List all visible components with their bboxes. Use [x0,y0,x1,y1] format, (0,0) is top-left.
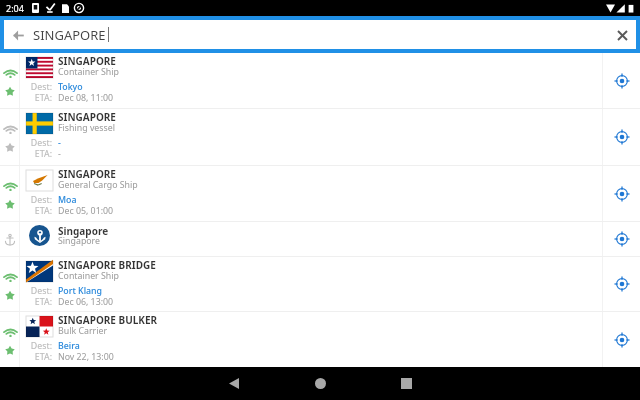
button[interactable]: SINGAPORE BRIDGE [0,257,640,311]
button[interactable]: Back [191,367,277,400]
staticText: ETA: [24,92,52,104]
staticText: Fishing vessel [58,122,115,134]
staticText: SINGAPORE [58,54,116,68]
staticText: Dest: [24,194,52,206]
button[interactable]: Center on map [603,257,640,311]
staticText: Dec 08, 11:00 [58,92,114,104]
button[interactable]: Center on map [603,109,640,165]
staticText: Container Ship [58,66,119,78]
staticText: Moa [58,194,77,206]
button[interactable]: Center on map [603,53,640,108]
staticText: ETA: [24,148,52,160]
button[interactable]: Clear search [608,21,636,49]
staticText: - [58,137,61,149]
staticText: ETA: [24,351,52,363]
button[interactable]: Home [277,367,363,400]
button[interactable]: SINGAPORE BULKER [0,312,640,367]
staticText: - [58,148,61,160]
staticText: Singapore [58,235,101,247]
staticText: Dec 06, 13:00 [58,296,114,308]
staticText: SINGAPORE [58,167,116,181]
staticText: Dest: [24,340,52,352]
staticText: SINGAPORE BRIDGE [58,258,156,272]
staticText: SINGAPORE [58,110,116,124]
staticText: ETA: [24,205,52,217]
staticText: Nov 22, 13:00 [58,351,114,363]
staticText: Dest: [24,81,52,93]
button[interactable]: Center on map [603,312,640,367]
button[interactable]: SINGAPORE [0,53,640,108]
staticText: Dest: [24,137,52,149]
staticText: Container Ship [58,270,119,282]
staticText: Port Klang [58,285,103,297]
staticText: Dec 05, 01:00 [58,205,114,217]
staticText: Beira [58,340,80,352]
button[interactable]: SINGAPORE [0,166,640,221]
button[interactable]: Back [4,21,32,49]
staticText: Bulk Carrier [58,325,108,337]
staticText: General Cargo Ship [58,179,138,191]
button[interactable]: Singapore [0,222,640,256]
staticText: Singapore [58,224,109,238]
staticText: SINGAPORE [33,26,106,44]
button[interactable]: Recents [363,367,449,400]
button[interactable]: SINGAPORE [0,109,640,165]
staticText: 2:04 [6,2,24,14]
staticText: SINGAPORE BULKER [58,313,158,327]
staticText: Dest: [24,285,52,297]
button[interactable]: Center on map [603,166,640,221]
button[interactable]: Center on map [603,222,640,256]
staticText: Tokyo [58,81,83,93]
staticText: ETA: [24,296,52,308]
